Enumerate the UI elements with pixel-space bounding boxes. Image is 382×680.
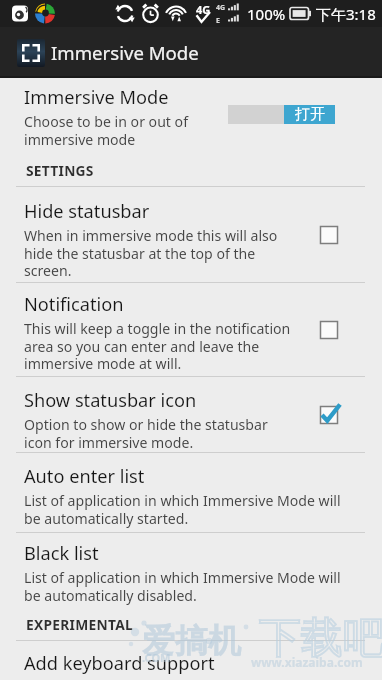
button[interactable]: Auto enter list: [0, 453, 382, 533]
staticText: EXPERIMENTAL: [26, 615, 133, 634]
button[interactable]: Immersive mode on: [228, 105, 335, 124]
staticText: 100%: [247, 4, 286, 24]
button[interactable]: Toggle setting: [315, 221, 343, 249]
staticText: 下载吧: [259, 612, 382, 665]
staticText: SETTINGS: [26, 161, 94, 180]
staticText: 打开: [295, 105, 325, 124]
staticText: Notification: [24, 292, 124, 317]
button[interactable]: Immersive Mode: [0, 78, 382, 158]
staticText: Add keyboard support: [24, 651, 215, 676]
staticText: www.xiazaiba.com: [251, 654, 363, 670]
button[interactable]: Toggle setting: [315, 316, 343, 344]
staticText: Show statusbar icon: [24, 388, 197, 413]
staticText: List of application in which Immersive M…: [24, 568, 341, 605]
button[interactable]: Immersive Mode app icon: [17, 39, 45, 67]
button[interactable]: Black list: [0, 533, 382, 612]
staticText: Auto enter list: [24, 464, 145, 489]
staticText: 爱搞机: [142, 620, 241, 662]
staticText: Hide statusbar: [24, 199, 150, 224]
staticText: Option to show or hide the statusbar ico…: [24, 415, 268, 452]
staticText: Immersive Mode: [24, 85, 169, 110]
staticText: Choose to be in or out of immersive mode: [24, 112, 188, 149]
staticText: E: [216, 16, 220, 25]
button[interactable]: Hide statusbar: [0, 187, 382, 283]
staticText: .COM: [142, 650, 171, 665]
staticText: When in immersive mode this will also hi…: [24, 226, 278, 280]
staticText: 4G: [196, 2, 211, 17]
button[interactable]: Add keyboard support: [0, 641, 382, 680]
staticText: List of application in which Immersive M…: [24, 491, 341, 528]
button[interactable]: Notification: [0, 283, 382, 377]
staticText: 4G: [216, 3, 226, 13]
staticText: Immersive Mode: [51, 40, 199, 65]
button[interactable]: Show statusbar icon: [0, 377, 382, 453]
button[interactable]: Toggle setting: [315, 401, 343, 429]
staticText: 下午3:18: [316, 4, 376, 24]
staticText: Black list: [24, 541, 99, 566]
staticText: This will keep a toggle in the notificat…: [24, 319, 291, 373]
